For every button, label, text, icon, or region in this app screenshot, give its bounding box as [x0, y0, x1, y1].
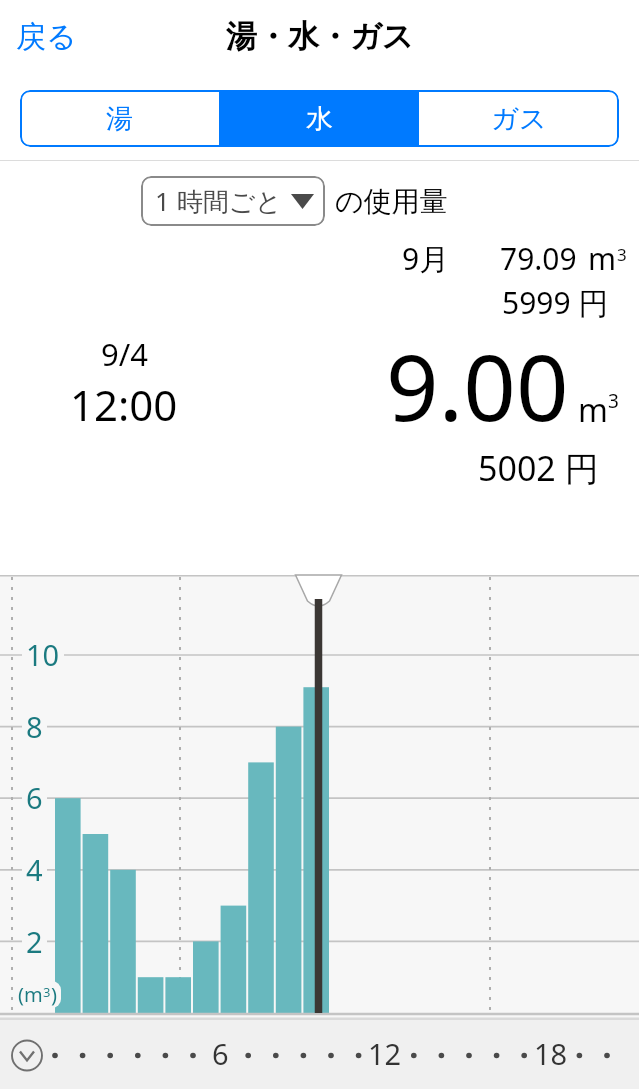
button[interactable]: 水 [219, 90, 419, 147]
button[interactable]: ガス [419, 90, 619, 147]
staticText: の使用量 [335, 184, 448, 219]
staticText: 5999 円 [502, 282, 609, 323]
button[interactable]: 戻る [10, 12, 83, 62]
staticText: ガス [491, 102, 547, 136]
staticText: 水 [306, 102, 333, 136]
staticText: 5002 円 [478, 445, 599, 491]
staticText: (m [18, 981, 43, 1008]
staticText: m [588, 238, 617, 279]
staticText: 2 [26, 922, 43, 961]
staticText: 10 [26, 635, 60, 674]
staticText: 3 [617, 243, 627, 266]
staticText: 9月 [402, 238, 450, 279]
staticText: 12:00 [70, 376, 178, 433]
staticText: 3 [43, 983, 51, 1001]
staticText: 6 [26, 778, 43, 817]
staticText: 湯 [106, 102, 133, 136]
other: Time range [0, 1020, 639, 1089]
staticText: 6 [212, 1034, 229, 1073]
staticText: 戻る [16, 18, 77, 56]
staticText: 9/4 [101, 333, 148, 375]
staticText: 4 [26, 850, 43, 889]
staticText: 12 [368, 1034, 402, 1073]
button[interactable]: 1 時間ごと [141, 176, 325, 226]
button[interactable]: 湯 [20, 90, 219, 147]
staticText: 3 [608, 388, 619, 414]
staticText: ) [51, 981, 57, 1008]
staticText: m [578, 388, 608, 432]
staticText: 79.09 [500, 238, 577, 279]
staticText: 18 [534, 1034, 568, 1073]
staticText: 8 [26, 707, 43, 746]
staticText: 湯・水・ガス [226, 17, 414, 56]
staticText: 9.00 [386, 323, 569, 448]
staticText: 1 時間ごと [155, 183, 282, 219]
